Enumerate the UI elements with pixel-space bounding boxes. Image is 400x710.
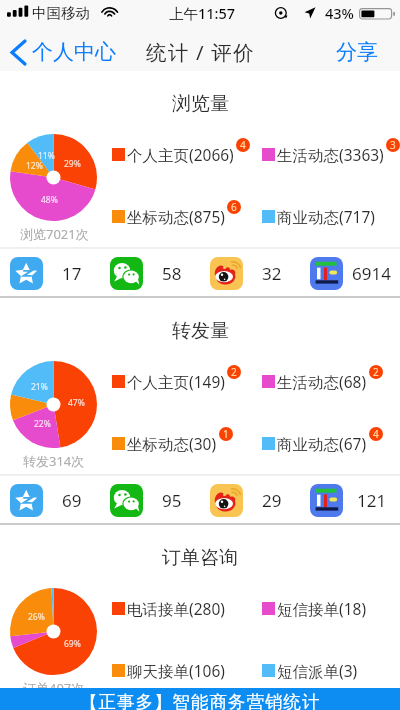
button[interactable]: 生活动态(68) <box>262 370 381 392</box>
button[interactable]: 分享 <box>328 27 386 77</box>
staticText: 4 <box>373 427 379 441</box>
other: 微博 <box>210 484 243 517</box>
staticText: 短信接单(18) <box>277 598 367 619</box>
staticText: 统计 / 评价 <box>146 38 255 66</box>
staticText: 坐标动态(875) <box>127 206 225 227</box>
button[interactable]: 资讯 <box>300 484 400 517</box>
staticText: 121 <box>357 489 387 512</box>
staticText: 69 <box>62 489 82 512</box>
staticText: 生活动态(68) <box>277 371 367 392</box>
staticText: 95 <box>162 489 182 512</box>
staticText: 个人主页(149) <box>127 371 225 392</box>
other: 资讯 <box>310 257 343 290</box>
button[interactable]: 坐标动态(30) <box>112 432 231 454</box>
other: 资讯 <box>310 484 343 517</box>
button[interactable]: 微博 <box>200 257 300 290</box>
button[interactable]: 微博 <box>200 484 300 517</box>
staticText: 58 <box>162 262 182 285</box>
staticText: 29 <box>262 489 282 512</box>
staticText: 商业动态(67) <box>277 433 367 454</box>
staticText: 11% <box>38 150 55 162</box>
button[interactable]: QQ空间 <box>0 257 100 290</box>
button[interactable]: 个人主页(149) <box>112 370 239 392</box>
staticText: 1 <box>223 427 229 441</box>
staticText: 上午11:57 <box>2 3 400 23</box>
staticText: 26% <box>28 611 45 623</box>
button[interactable]: 个人主页(2066) <box>112 143 248 165</box>
staticText: 21% <box>31 381 48 393</box>
staticText: 43% <box>325 3 354 23</box>
button[interactable]: 生活动态(3363) <box>262 143 398 165</box>
staticText: 个人中心 <box>32 39 116 65</box>
staticText: 浏览7021次 <box>20 225 89 243</box>
other: 微信 <box>110 484 143 517</box>
button[interactable]: 微信 <box>100 484 200 517</box>
staticText: 47% <box>68 397 85 409</box>
staticText: 17 <box>62 262 82 285</box>
staticText: 转发314次 <box>23 452 85 470</box>
staticText: 浏览量 <box>172 92 229 116</box>
button[interactable]: 电话接单(280) <box>112 597 225 619</box>
staticText: 6 <box>231 200 237 214</box>
button[interactable]: 个人中心 <box>0 27 122 77</box>
button[interactable]: 商业动态(67) <box>262 432 381 454</box>
staticText: 转发量 <box>172 319 229 343</box>
staticText: 订单407次 <box>23 679 85 697</box>
staticText: 【正事多】智能商务营销统计 <box>80 691 321 710</box>
button[interactable]: 微信 <box>100 257 200 290</box>
button[interactable]: 聊天接单(106) <box>112 659 225 681</box>
staticText: 3 <box>390 138 396 152</box>
staticText: 个人主页(2066) <box>127 144 234 165</box>
staticText: 2 <box>373 365 379 379</box>
button[interactable]: 短信接单(18) <box>262 597 367 619</box>
staticText: 69% <box>64 638 81 650</box>
other: 微博 <box>210 257 243 290</box>
other: QQ空间 <box>10 484 43 517</box>
staticText: 2 <box>231 365 237 379</box>
staticText: 6914 <box>352 262 391 285</box>
staticText: 12% <box>26 160 43 172</box>
other: 微信 <box>110 257 143 290</box>
button[interactable]: 【正事多】智能商务营销统计 <box>0 688 400 710</box>
staticText: 订单咨询 <box>162 546 238 570</box>
staticText: 坐标动态(30) <box>127 433 217 454</box>
staticText: 29% <box>64 158 81 170</box>
button[interactable]: 坐标动态(875) <box>112 205 239 227</box>
staticText: 中国移动 <box>32 4 90 22</box>
staticText: 22% <box>34 418 51 430</box>
staticText: 电话接单(280) <box>127 598 225 619</box>
button[interactable]: QQ空间 <box>0 484 100 517</box>
other: QQ空间 <box>10 257 43 290</box>
staticText: 32 <box>262 262 282 285</box>
button[interactable]: 资讯 <box>300 257 400 290</box>
staticText: 聊天接单(106) <box>127 660 225 681</box>
staticText: 48% <box>41 194 58 206</box>
staticText: 短信派单(3) <box>277 660 358 681</box>
button[interactable]: 商业动态(717) <box>262 205 375 227</box>
staticText: 商业动态(717) <box>277 206 375 227</box>
staticText: 4 <box>240 138 246 152</box>
button[interactable]: 短信派单(3) <box>262 659 358 681</box>
staticText: 分享 <box>336 39 378 65</box>
staticText: 生活动态(3363) <box>277 144 384 165</box>
